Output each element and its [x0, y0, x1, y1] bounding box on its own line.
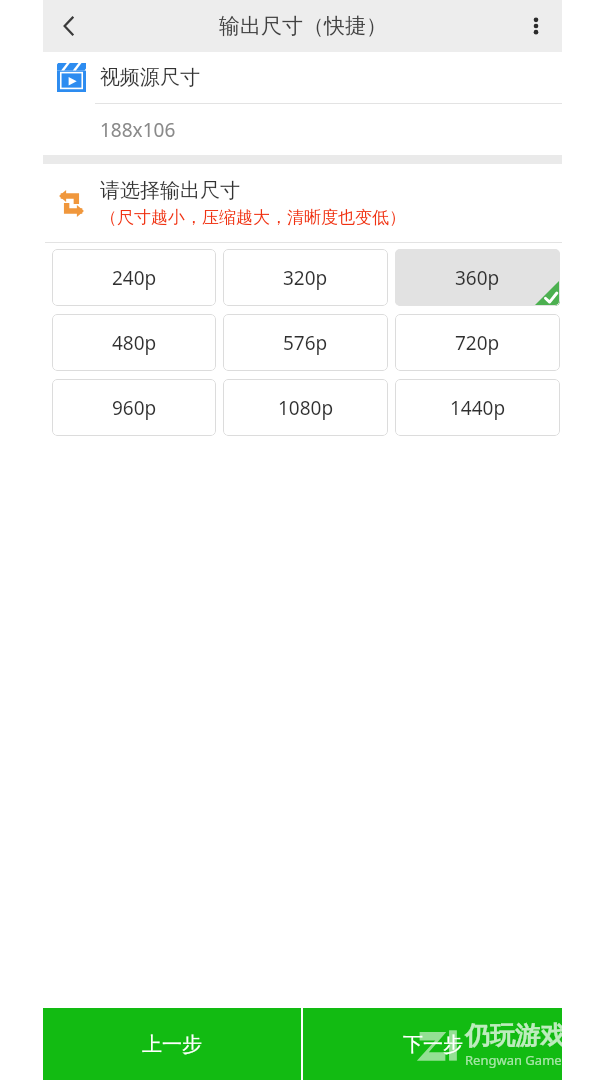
staticText: 1440p: [450, 395, 506, 421]
staticText: 960p: [112, 395, 157, 421]
button[interactable]: 188x106: [43, 104, 562, 155]
staticText: 480p: [112, 330, 157, 356]
button[interactable]: 上一步: [43, 1008, 301, 1080]
button[interactable]: 960p: [52, 379, 216, 436]
button[interactable]: Back: [43, 0, 95, 52]
button[interactable]: 480p: [52, 314, 216, 371]
button[interactable]: 360p: [395, 249, 560, 306]
staticText: 输出尺寸（快捷）: [219, 13, 387, 39]
staticText: 320p: [283, 265, 328, 291]
button[interactable]: 下一步: [303, 1008, 562, 1080]
staticText: 下一步: [403, 1032, 463, 1057]
staticText: 576p: [283, 330, 328, 356]
button[interactable]: More options: [510, 0, 562, 52]
button[interactable]: 1440p: [395, 379, 560, 436]
staticText: 240p: [112, 265, 157, 291]
staticText: 上一步: [142, 1032, 202, 1057]
button[interactable]: 320p: [223, 249, 388, 306]
staticText: 720p: [455, 330, 500, 356]
staticText: 188x106: [100, 117, 176, 143]
button[interactable]: 720p: [395, 314, 560, 371]
staticText: 仍玩游戏: [465, 1020, 565, 1051]
staticText: 请选择输出尺寸: [100, 178, 240, 203]
button[interactable]: 1080p: [223, 379, 388, 436]
button[interactable]: 240p: [52, 249, 216, 306]
staticText: 视频源尺寸: [100, 65, 200, 90]
staticText: Rengwan Games: [465, 1051, 568, 1069]
staticText: （尺寸越小，压缩越大，清晰度也变低）: [100, 207, 406, 228]
staticText: 1080p: [278, 395, 334, 421]
staticText: 360p: [455, 265, 500, 291]
button[interactable]: 576p: [223, 314, 388, 371]
